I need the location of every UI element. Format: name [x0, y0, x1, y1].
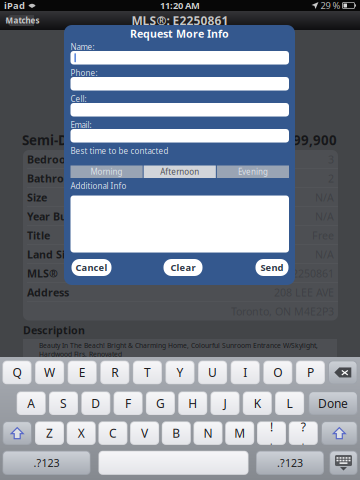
button[interactable]: .?123	[256, 451, 324, 475]
staticText: L	[287, 395, 293, 411]
button[interactable]: V	[130, 421, 159, 445]
staticText: Y	[176, 364, 183, 380]
button[interactable]: Afternoon	[144, 165, 216, 178]
staticText: Matches	[5, 15, 39, 26]
button[interactable]: Evening	[217, 165, 289, 178]
staticText: Morning	[91, 166, 123, 177]
staticText: Toronto, ON M4E2P3	[231, 304, 334, 318]
button[interactable]: H	[178, 391, 207, 415]
staticText: F	[125, 395, 131, 411]
button[interactable]: J	[210, 391, 239, 415]
button[interactable]: L	[275, 391, 304, 415]
button[interactable]: R	[100, 361, 129, 384]
button[interactable]: ?	[289, 419, 318, 447]
button[interactable]: .?123	[2, 451, 90, 475]
staticText: Kitchen W/Granite Counters, Ceramic Back…	[27, 360, 330, 377]
button[interactable]: Q	[2, 361, 31, 384]
staticText: .	[270, 435, 273, 447]
button[interactable]: O	[263, 361, 292, 384]
button[interactable]: Y	[165, 361, 194, 384]
button[interactable]: G	[146, 391, 175, 415]
staticText: N/A	[315, 247, 334, 261]
staticText: X	[78, 425, 85, 441]
staticText: .	[302, 435, 305, 447]
button[interactable]: D	[81, 391, 110, 415]
button[interactable]: F	[114, 391, 143, 415]
staticText: ?	[301, 419, 306, 435]
staticText: Q	[12, 364, 21, 380]
staticText: Bathrooms	[27, 171, 86, 185]
button[interactable]: Morning	[70, 165, 143, 178]
staticText: S	[60, 395, 67, 411]
staticText: U	[208, 364, 217, 380]
staticText: !	[270, 419, 273, 435]
staticText: MLS®	[27, 266, 58, 280]
button[interactable]: T	[133, 361, 162, 384]
staticText: $599,900	[277, 131, 337, 149]
staticText: Done	[318, 395, 348, 411]
staticText: 11:20 AM	[160, 0, 200, 12]
button[interactable]: Clear	[163, 259, 202, 276]
staticText: iPad	[4, 0, 25, 12]
staticText: Bedrooms	[27, 152, 81, 166]
button[interactable]: !	[257, 419, 286, 447]
staticText: O	[273, 364, 282, 380]
staticText: .?123	[33, 456, 59, 470]
staticText: J	[223, 395, 226, 411]
staticText: Additional Info	[70, 181, 126, 191]
staticText: N/A	[315, 209, 334, 223]
button[interactable]: I	[231, 361, 260, 384]
button[interactable]: B	[162, 421, 191, 445]
staticText: R	[111, 364, 118, 380]
staticText: T	[144, 364, 151, 380]
button[interactable]: Send	[255, 259, 288, 276]
staticText: E2250861	[286, 266, 334, 280]
staticText: Free	[312, 228, 334, 242]
button[interactable]: Shift	[3, 421, 32, 445]
staticText: .?123	[277, 456, 303, 470]
staticText: I	[243, 364, 247, 380]
staticText: Clear	[170, 261, 195, 274]
staticText: G	[156, 395, 165, 411]
staticText: Send	[260, 261, 283, 274]
staticText: N/A	[315, 190, 334, 204]
button[interactable]: A	[17, 391, 46, 415]
button[interactable]: M	[225, 421, 254, 445]
button[interactable]: C	[98, 421, 127, 445]
staticText: B	[172, 425, 180, 441]
staticText: H	[188, 395, 197, 411]
staticText: Semi-Detached	[22, 131, 122, 149]
staticText: D	[91, 395, 100, 411]
staticText: W	[44, 364, 55, 380]
staticText: 208 LEE AVE	[274, 285, 334, 299]
button[interactable]: Delete	[328, 361, 357, 384]
button[interactable]: S	[49, 391, 78, 415]
button[interactable]: Cancel	[71, 259, 111, 276]
button[interactable]: X	[67, 421, 96, 445]
button[interactable]: Shift	[321, 421, 357, 445]
staticText: P	[307, 364, 314, 380]
button[interactable]: Done	[309, 391, 358, 415]
staticText: Evening	[238, 166, 268, 177]
staticText: Afternoon	[160, 166, 199, 177]
button[interactable]: Space	[98, 451, 248, 475]
button[interactable]: N	[193, 421, 222, 445]
button[interactable]: W	[35, 361, 64, 384]
button[interactable]: U	[198, 361, 227, 384]
button[interactable]: Matches	[5, 15, 36, 26]
button[interactable]: Hide keyboard	[329, 451, 357, 475]
staticText: Name:	[70, 42, 94, 52]
button[interactable]: K	[243, 391, 272, 415]
staticText: Beauty In The Beach! Bright & Charming H…	[39, 341, 318, 359]
staticText: Cell:	[70, 94, 86, 104]
staticText: C	[109, 425, 117, 441]
button[interactable]: P	[296, 361, 325, 384]
staticText: Email:	[70, 120, 91, 130]
staticText: E	[79, 364, 86, 380]
button[interactable]: Z	[35, 421, 64, 445]
staticText: Cancel	[75, 261, 107, 274]
staticText: A	[27, 395, 35, 411]
staticText: K	[254, 395, 261, 411]
staticText: M	[234, 425, 245, 441]
button[interactable]: E	[68, 361, 97, 384]
